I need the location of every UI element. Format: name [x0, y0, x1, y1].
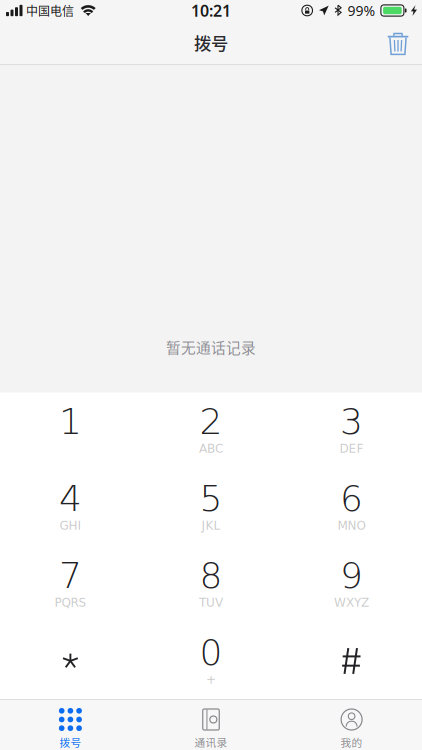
button[interactable]: 拨号 [0, 699, 141, 750]
button[interactable]: 7 [0, 546, 141, 623]
button[interactable]: 6 [281, 469, 422, 546]
staticText: GHI [59, 518, 81, 532]
staticText: 拨号 [194, 30, 228, 55]
staticText: 0 [199, 631, 222, 673]
staticText: WXYZ [334, 595, 369, 609]
staticText: 7 [59, 554, 82, 596]
button[interactable]: 2 [141, 392, 281, 469]
staticText: 通讯录 [194, 734, 227, 750]
button[interactable]: 5 [141, 469, 281, 546]
staticText: 中国电信 [26, 2, 74, 19]
staticText: 暂无通话记录 [166, 336, 256, 358]
staticText: 9 [340, 554, 363, 596]
staticText: DEF [340, 441, 364, 455]
staticText: ABC [199, 441, 223, 455]
staticText: 2 [199, 400, 222, 442]
button[interactable]: 1 [0, 392, 141, 469]
staticText [350, 672, 354, 686]
button[interactable]: 4 [0, 469, 141, 546]
button[interactable]: 我的 [281, 699, 422, 750]
staticText: 10:21 [191, 0, 231, 21]
staticText: 拨号 [59, 734, 81, 750]
staticText: PQRS [54, 595, 86, 609]
staticText: TUV [199, 595, 223, 609]
button[interactable]: 8 [141, 546, 281, 623]
staticText: 5 [199, 477, 222, 519]
staticText: + [206, 672, 216, 686]
staticText: 8 [199, 554, 222, 596]
button[interactable]: 9 [281, 546, 422, 623]
button[interactable]: 0 [141, 623, 281, 700]
button[interactable]: 3 [281, 392, 422, 469]
staticText: 6 [340, 477, 363, 519]
staticText: 4 [59, 477, 82, 519]
staticText: MNO [338, 518, 366, 532]
staticText: 1 [59, 400, 82, 442]
staticText: JKL [201, 518, 220, 532]
button[interactable]: 通讯录 [141, 699, 281, 750]
staticText: 3 [340, 400, 363, 442]
button[interactable] [281, 623, 422, 700]
staticText: 99% [347, 1, 375, 20]
staticText: 我的 [341, 734, 363, 750]
button[interactable]: 清空通话记录 [374, 24, 422, 65]
button[interactable] [0, 623, 141, 700]
